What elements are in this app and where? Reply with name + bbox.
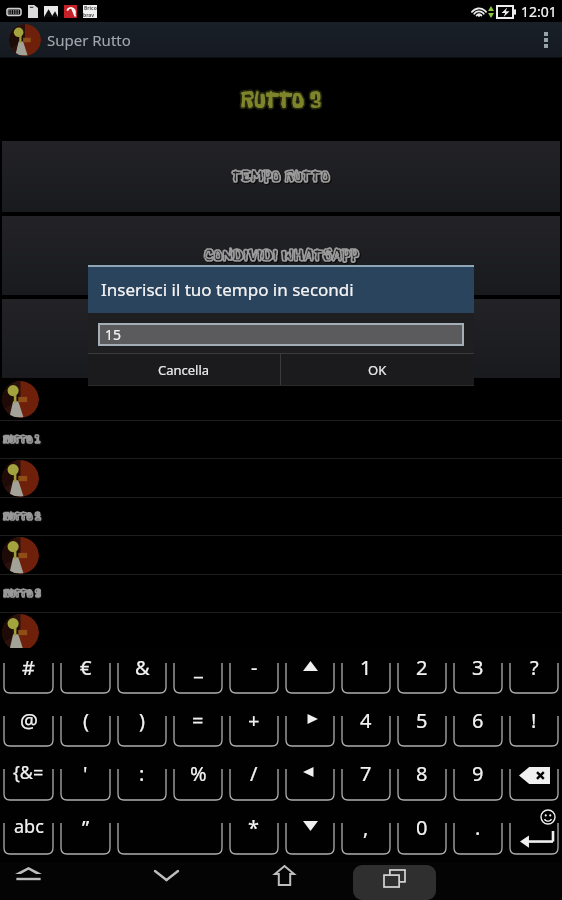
staticText: RUTTO 4 xyxy=(4,665,42,679)
button[interactable]: More options xyxy=(530,22,562,58)
button[interactable] xyxy=(282,808,338,862)
button[interactable]: , xyxy=(338,808,394,862)
button[interactable]: 8 xyxy=(394,754,450,808)
staticText: TEMPO RUTTO xyxy=(232,166,330,187)
button[interactable]: 9 xyxy=(450,754,506,808)
button[interactable]: abc xyxy=(0,808,57,862)
staticText: 6 xyxy=(472,707,484,734)
button[interactable]: OK xyxy=(281,354,474,385)
staticText: € xyxy=(80,654,92,681)
staticText: , xyxy=(363,814,369,841)
button[interactable]: 2 xyxy=(394,648,450,701)
button[interactable]: € xyxy=(57,648,114,701)
button[interactable]: 7 xyxy=(338,754,394,808)
staticText: OK xyxy=(368,361,387,379)
staticText: 0 xyxy=(416,814,428,841)
button[interactable]: {&= xyxy=(0,754,57,808)
staticText: - xyxy=(251,654,258,681)
button[interactable]: Cancella xyxy=(88,354,280,385)
button[interactable]: . xyxy=(450,808,506,862)
staticText: ? xyxy=(530,654,539,681)
button[interactable]: ) xyxy=(114,701,170,754)
button[interactable]: # xyxy=(0,648,57,701)
staticText: RUTTO 4 xyxy=(3,664,41,678)
staticText: 7 xyxy=(360,760,372,787)
staticText: 9 xyxy=(472,760,484,787)
staticText: 5 xyxy=(416,707,428,734)
staticText: Cancella xyxy=(158,361,210,379)
button[interactable]: @ xyxy=(0,701,57,754)
staticText: RUTTO 1 xyxy=(3,433,40,447)
button[interactable] xyxy=(282,754,338,808)
button[interactable]: 1 xyxy=(338,648,394,701)
button[interactable]: TEMPO RUTTO xyxy=(2,141,560,212)
button[interactable] xyxy=(2,299,560,378)
button[interactable]: ! xyxy=(506,701,562,754)
staticText: 1 xyxy=(360,654,372,681)
button[interactable]: RUTTO 3 xyxy=(0,575,562,612)
button[interactable]: ( xyxy=(57,701,114,754)
button[interactable]: 6 xyxy=(450,701,506,754)
staticText: & xyxy=(135,654,150,681)
button[interactable]: 4 xyxy=(338,701,394,754)
staticText: TEMPO RUTTO xyxy=(233,167,331,188)
button[interactable]: _ xyxy=(170,648,226,701)
button[interactable]: Home xyxy=(261,862,307,900)
staticText: ( xyxy=(83,707,89,734)
button[interactable] xyxy=(282,701,338,754)
staticText: RUTTO 5 xyxy=(3,741,41,755)
button[interactable]: / xyxy=(226,754,282,808)
button[interactable]: 0 xyxy=(394,808,450,862)
button[interactable]: ” xyxy=(57,808,114,862)
staticText: RUTTO 1 xyxy=(3,433,40,447)
staticText: Brico xyxy=(84,5,97,12)
button[interactable]: % xyxy=(170,754,226,808)
button[interactable]: RUTTO 1 xyxy=(0,421,562,458)
staticText: Inserisci il tuo tempo in secondi xyxy=(101,278,354,301)
button[interactable]: RUTTO 2 xyxy=(0,498,562,535)
staticText: RUTTO 5 xyxy=(3,741,41,755)
button[interactable] xyxy=(0,379,562,420)
button[interactable] xyxy=(282,648,338,701)
button[interactable] xyxy=(0,536,562,574)
staticText: : xyxy=(139,760,145,787)
button[interactable]: CONDIVIDI WHATSAPP xyxy=(2,216,560,295)
staticText: 4 xyxy=(360,707,372,734)
button[interactable]: Recent apps xyxy=(353,865,436,900)
staticText: ” xyxy=(82,814,90,841)
staticText: RUTTO 2 xyxy=(3,510,41,524)
button[interactable]: & xyxy=(114,648,170,701)
staticText: ) xyxy=(139,707,145,734)
button[interactable]: RUTTO 5 xyxy=(0,729,562,766)
staticText: RUTTO 1 xyxy=(4,434,41,448)
button[interactable] xyxy=(506,754,562,808)
button[interactable]: Back xyxy=(5,862,51,900)
staticText: RUTTO 3 xyxy=(240,85,322,114)
button[interactable] xyxy=(506,808,562,862)
staticText: + xyxy=(248,707,260,734)
staticText: 12:01 xyxy=(521,2,557,21)
staticText: RUTTO 5 xyxy=(4,742,42,756)
staticText: TEMPO RUTTO xyxy=(232,166,330,187)
staticText: . xyxy=(475,814,481,841)
button[interactable]: 5 xyxy=(394,701,450,754)
button[interactable]: Hide keyboard xyxy=(143,862,189,900)
button[interactable]: * xyxy=(226,808,282,862)
button[interactable] xyxy=(0,613,562,651)
button[interactable]: : xyxy=(114,754,170,808)
button[interactable]: ? xyxy=(506,648,562,701)
button[interactable]: RUTTO 4 xyxy=(0,652,562,689)
staticText: RUTTO 4 xyxy=(3,664,41,678)
staticText: 3 xyxy=(472,654,484,681)
button[interactable] xyxy=(0,690,562,728)
staticText: CONDIVIDI WHATSAPP xyxy=(205,246,360,267)
button[interactable]: - xyxy=(226,648,282,701)
button[interactable]: + xyxy=(226,701,282,754)
button[interactable] xyxy=(0,459,562,497)
staticText: % xyxy=(190,760,207,787)
button[interactable]: 3 xyxy=(450,648,506,701)
button[interactable]: ' xyxy=(57,754,114,808)
staticText: = xyxy=(192,707,204,734)
button[interactable]: = xyxy=(170,701,226,754)
button[interactable] xyxy=(114,808,226,862)
